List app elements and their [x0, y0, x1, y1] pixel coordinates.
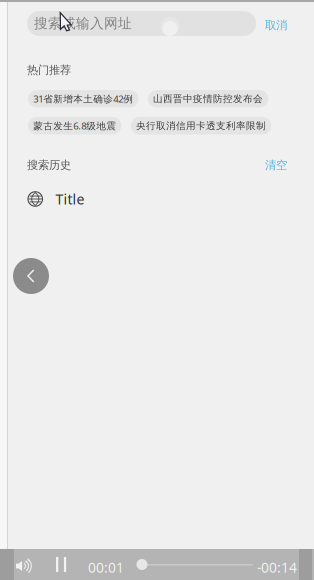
staticText: 搜索历史	[27, 158, 71, 172]
button[interactable]: 蒙古发生6.8级地震	[28, 117, 121, 134]
staticText: 热门推荐	[27, 63, 71, 77]
staticText: Title	[55, 189, 84, 209]
staticText: 00:01	[88, 558, 124, 577]
staticText: 蒙古发生6.8级地震	[33, 119, 116, 132]
staticText: 清空	[265, 158, 287, 172]
button[interactable]: 山西晋中疫情防控发布会	[148, 90, 268, 107]
staticText: -00:14	[257, 558, 297, 577]
button[interactable]: 清空	[261, 154, 291, 176]
button[interactable]: Pause	[52, 553, 70, 576]
button[interactable]: 央行取消信用卡透支利率限制	[131, 117, 271, 134]
button[interactable]: Back	[13, 258, 49, 294]
staticText: 31省新增本土确诊42例	[33, 92, 133, 105]
staticText: 山西晋中疫情防控发布会	[153, 93, 263, 105]
staticText: 取消	[265, 18, 287, 32]
button[interactable]: Title	[0, 186, 306, 212]
button[interactable]: 31省新增本土确诊42例	[28, 90, 138, 107]
staticText: 央行取消信用卡透支利率限制	[136, 120, 266, 132]
button[interactable]: 取消	[261, 13, 291, 37]
staticText: 搜索或输入网址	[34, 15, 132, 32]
button[interactable]: Mute	[12, 557, 42, 576]
